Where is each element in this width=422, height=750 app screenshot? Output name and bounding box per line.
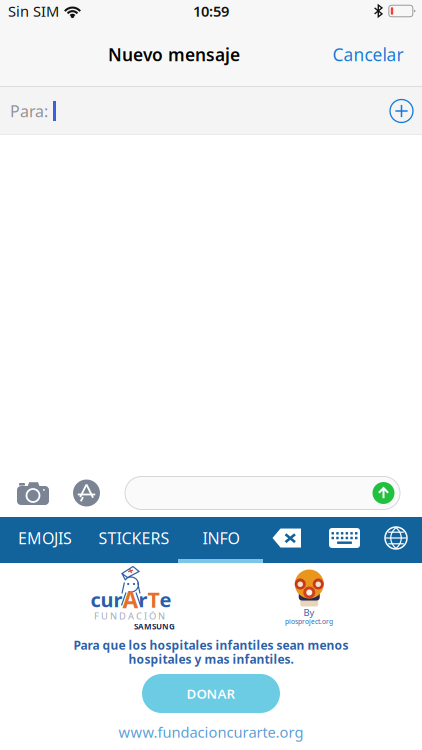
staticText: A	[122, 584, 138, 614]
staticText: SAMSUNG	[134, 621, 175, 632]
button[interactable]: Delete	[272, 527, 302, 548]
button[interactable]: Add contact	[381, 90, 422, 131]
staticText: Sin SIM	[8, 1, 59, 21]
button[interactable]: Next keyboard	[385, 527, 407, 549]
staticText: STICKERS	[98, 527, 169, 549]
staticText: T	[147, 585, 159, 614]
staticText: cur	[90, 586, 122, 613]
staticText: Cancelar	[332, 43, 403, 66]
button[interactable]: Show keyboard	[329, 528, 360, 548]
staticText: e	[159, 586, 171, 613]
staticText: piosproject.org	[285, 617, 333, 626]
staticText: Para:	[10, 100, 48, 122]
staticText: www.fundacioncurarte.org	[118, 722, 303, 742]
button[interactable]: STICKERS	[90, 517, 178, 559]
staticText: EMOJIS	[18, 527, 72, 549]
button[interactable]: DONAR	[142, 674, 280, 713]
button[interactable]: App Store	[73, 479, 100, 506]
button[interactable]: EMOJIS	[0, 517, 90, 559]
staticText: By	[303, 606, 314, 619]
staticText: Para que los hospitales infantiles sean …	[73, 637, 348, 653]
button[interactable]: INFO	[178, 517, 264, 559]
button[interactable]: Send	[370, 479, 397, 506]
staticText: r	[138, 586, 147, 613]
staticText: 10:59	[193, 1, 229, 21]
button[interactable]: Cancelar	[331, 32, 405, 76]
staticText: F U N D A C I Ó N	[94, 610, 165, 622]
button[interactable]: Camera	[17, 481, 49, 505]
staticText: hospitales y mas infantiles.	[128, 651, 293, 667]
staticText: Nuevo mensaje	[108, 43, 240, 66]
staticText: DONAR	[186, 685, 235, 702]
staticText: INFO	[202, 527, 239, 549]
